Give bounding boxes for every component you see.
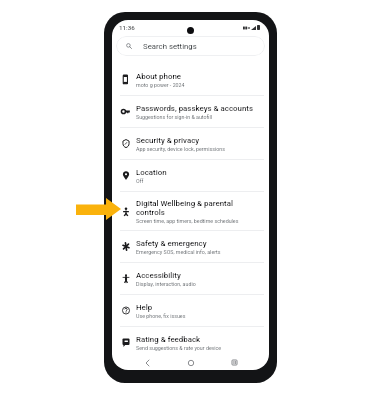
staticText: Screen time, app timers, bedtime schedul… [136,218,239,224]
staticText: Help [136,303,153,312]
staticText: moto g power - 2024 [136,82,185,88]
staticText: Search settings [143,42,197,51]
staticText: Use phone, fix issues [136,313,186,319]
staticText: 11:36 [119,24,135,31]
button[interactable]: Security & privacy [112,128,269,159]
button[interactable]: Search settings [116,36,265,56]
staticText: Security & privacy [136,136,200,145]
staticText: Safety & emergency [136,239,207,248]
staticText: Location [136,168,167,177]
button[interactable]: Safety & emergency [112,231,269,262]
button[interactable]: Accessibility [112,263,269,294]
button[interactable]: About phone [112,64,269,95]
staticText: Display, interaction, audio [136,281,196,287]
staticText: Emergency SOS, medical info, alerts [136,249,221,255]
button[interactable]: Help [112,295,269,326]
button[interactable]: Back [139,358,155,367]
staticText: Passwords, passkeys & accounts [136,104,254,113]
button[interactable]: Rating & feedback [112,327,269,358]
button[interactable]: Recent apps [226,358,242,367]
button[interactable]: Home [183,358,199,367]
button[interactable]: Digital Wellbeing & parental controls [112,192,269,230]
button[interactable]: Location [112,160,269,191]
staticText: Digital Wellbeing & parental controls [136,199,234,217]
staticText: Rating & feedback [136,335,201,344]
staticText: Accessibility [136,271,181,280]
staticText: About phone [136,72,182,81]
staticText: Send suggestions & rate your device [136,345,222,351]
button[interactable]: Passwords, passkeys & accounts [112,96,269,127]
staticText: Off [136,178,144,184]
staticText: Suggestions for sign-in & autofill [136,114,213,120]
staticText: App security, device lock, permissions [136,146,225,152]
